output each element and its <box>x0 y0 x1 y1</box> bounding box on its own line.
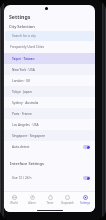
staticText: Timer <box>46 201 54 205</box>
button[interactable]: Paris · France <box>4 108 95 119</box>
staticText: Alarm <box>28 201 36 205</box>
button[interactable]: Singapore · Singapore <box>4 130 95 141</box>
button[interactable]: Use 12 / 24 h <box>4 172 95 183</box>
button[interactable]: Taipei · Taiwan <box>4 53 95 64</box>
staticText: Settings <box>80 201 90 205</box>
button[interactable]: Tokyo · Japan <box>4 86 95 97</box>
staticText: World <box>10 201 18 205</box>
staticText: Use 12 / 24 h <box>12 176 83 180</box>
staticText: Settings <box>9 13 31 20</box>
staticText: Stopwatch <box>61 201 74 205</box>
button[interactable]: London · UK <box>4 75 95 86</box>
staticText: London · UK <box>12 79 31 83</box>
button[interactable]: World <box>6 195 22 205</box>
staticText: City Selection <box>9 24 35 29</box>
button[interactable]: New York · USA <box>4 64 95 75</box>
button[interactable]: Alarm <box>24 195 40 205</box>
staticText: Search for a city <box>12 34 36 38</box>
button[interactable]: Settings <box>77 195 93 205</box>
staticText: New York · USA <box>12 68 35 72</box>
staticText: Sydney · Australia <box>12 101 39 105</box>
button[interactable]: Search for a city <box>5 31 94 41</box>
button[interactable]: Auto-detect <box>4 141 95 152</box>
staticText: Frequently Used Cities <box>10 45 45 49</box>
staticText: Taipei · Taiwan <box>12 57 35 61</box>
staticText: Interface Settings <box>10 161 45 166</box>
staticText: Los Angeles · USA <box>12 123 39 127</box>
button[interactable]: Timer <box>42 195 58 205</box>
button[interactable]: Los Angeles · USA <box>4 119 95 130</box>
button[interactable]: Sydney · Australia <box>4 97 95 108</box>
staticText: Singapore · Singapore <box>12 134 45 138</box>
button[interactable]: Stopwatch <box>59 195 75 205</box>
staticText: Paris · France <box>12 112 32 116</box>
staticText: Auto-detect <box>12 145 83 149</box>
staticText: Tokyo · Japan <box>12 90 32 94</box>
